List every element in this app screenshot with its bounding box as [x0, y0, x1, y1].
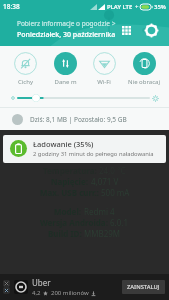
- staticText: Pobierz informacje o pogodzie >: [17, 19, 116, 28]
- staticText: 2 godziny 31 minut do pełnego naładowani…: [33, 150, 154, 158]
- staticText: 200 milionów: [51, 289, 89, 297]
- staticText: Nie obracaj: [128, 78, 160, 86]
- staticText: Uber: [32, 277, 51, 288]
- button[interactable]: ZAINSTALUJ: [122, 280, 165, 294]
- button[interactable]: Dziś: 8,1 MB | Pozostało: 9,5 GB: [12, 108, 169, 130]
- staticText: Napięcie:: [51, 176, 89, 187]
- staticText: Wersja Androida:: [40, 217, 108, 228]
- staticText: Cichy: [18, 78, 33, 86]
- staticText: Ładowanie (35%): [33, 139, 94, 149]
- staticText: 35%: [154, 3, 166, 11]
- staticText: Wi-Fi: [97, 78, 111, 86]
- staticText: Dane m: [54, 78, 77, 86]
- button[interactable]: Settings: [142, 21, 160, 39]
- staticText: 4,071 V: [91, 176, 119, 187]
- staticText: PLAY LTE: [107, 3, 133, 11]
- button[interactable]: Pobierz informacje o pogodzie >: [17, 19, 116, 40]
- button[interactable]: Dane m: [46, 51, 84, 87]
- staticText: +: [135, 3, 139, 11]
- staticText: Poniedziałek, 30 października: [17, 30, 116, 40]
- button[interactable]: Ładowanie (35%): [3, 135, 166, 163]
- button[interactable]: Nie obracaj: [125, 51, 163, 87]
- button[interactable]: Edit tiles: [117, 21, 135, 39]
- staticText: Model:: [54, 206, 82, 217]
- staticText: 500 mA: [101, 187, 130, 198]
- staticText: ZAINSTALUJ: [127, 283, 160, 291]
- staticText: Build ID:: [48, 228, 82, 239]
- staticText: Max. USB curr.:: [40, 187, 99, 198]
- button[interactable]: [10, 92, 159, 104]
- button[interactable]: Wi-Fi: [85, 51, 123, 87]
- staticText: 18:38: [3, 2, 20, 11]
- staticText: MMB29M: [84, 228, 121, 239]
- button[interactable]: Cichy: [6, 51, 44, 87]
- staticText: Redmi 4: [84, 206, 115, 217]
- staticText: 4,2: [32, 289, 41, 297]
- staticText: Dziś: 8,1 MB | Pozostało: 9,5 GB: [30, 115, 127, 124]
- staticText: 6.0.1: [110, 217, 129, 228]
